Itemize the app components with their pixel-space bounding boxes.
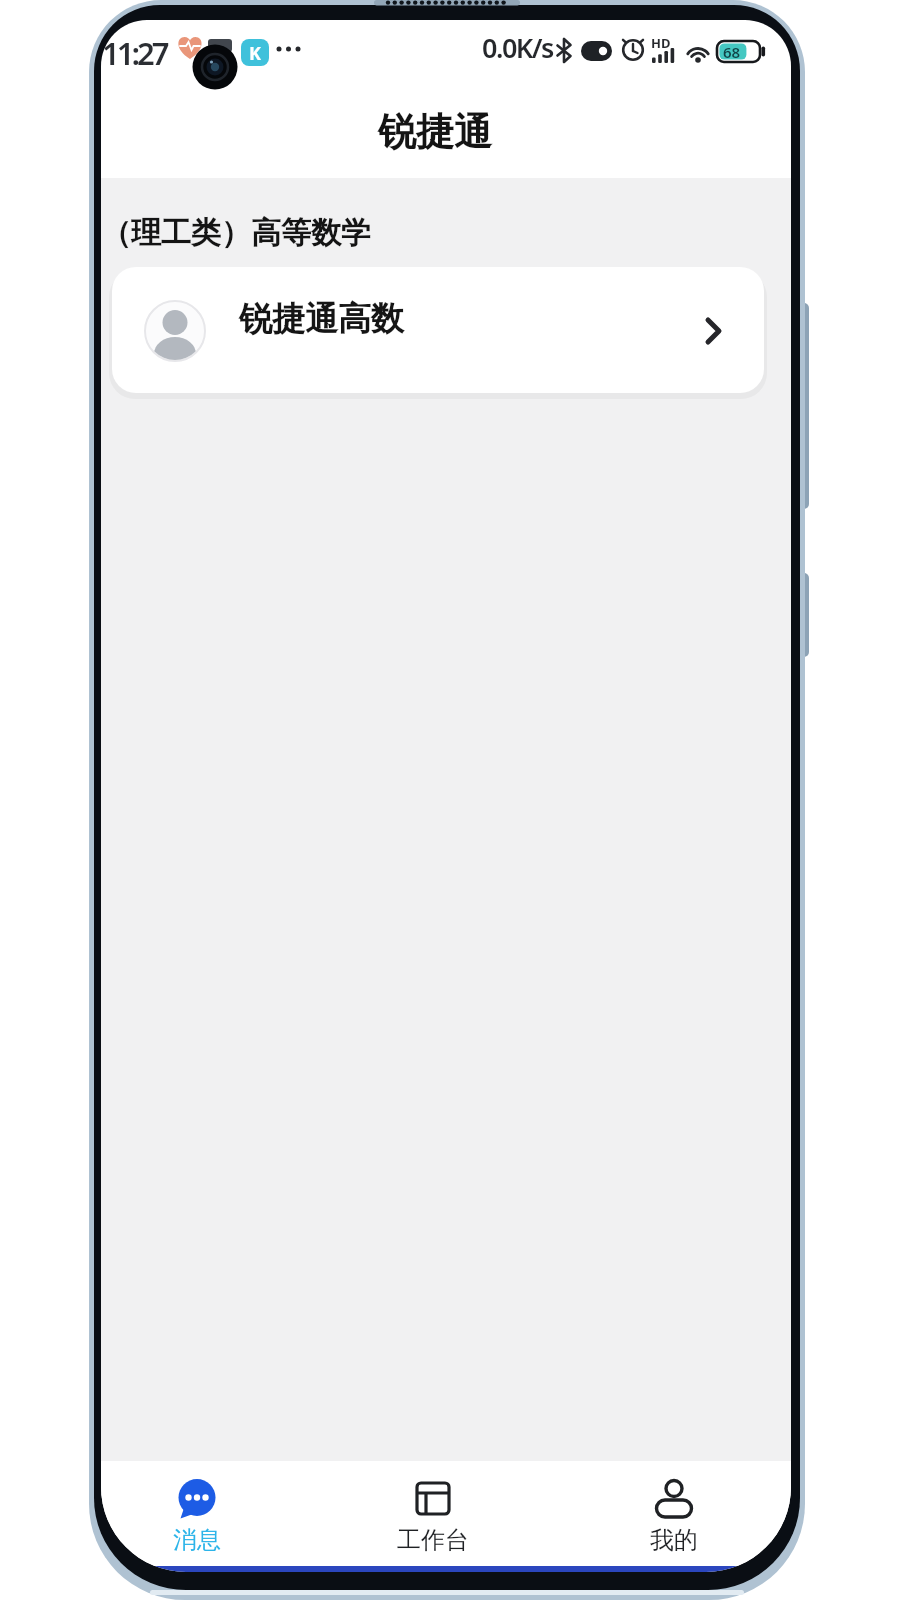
button[interactable]: 我的 — [594, 1468, 754, 1568]
staticText: （理工类）高等数学 — [101, 214, 371, 252]
staticText: 工作台 — [397, 1525, 469, 1555]
staticText: HD — [651, 34, 671, 52]
staticText: 68 — [723, 42, 741, 62]
button[interactable]: 锐捷通高数 — [112, 267, 764, 393]
staticText: 锐捷通高数 — [239, 298, 404, 340]
staticText: 消息 — [173, 1525, 221, 1555]
button[interactable]: 工作台 — [353, 1468, 513, 1568]
staticText: 0.0K/s — [482, 29, 553, 66]
staticText: 11:27 — [102, 32, 167, 74]
button[interactable]: 消息 — [117, 1468, 277, 1568]
staticText: 锐捷通 — [378, 108, 492, 156]
staticText: 我的 — [650, 1525, 698, 1555]
staticText: K — [249, 41, 261, 66]
